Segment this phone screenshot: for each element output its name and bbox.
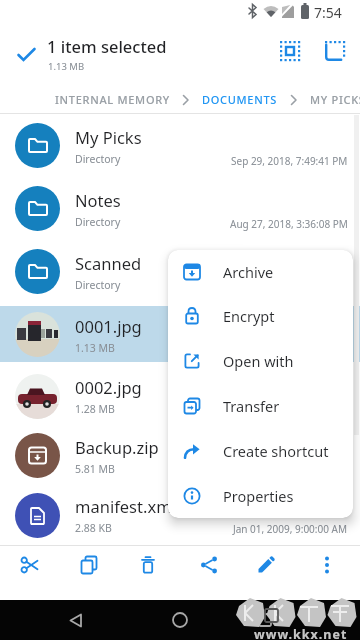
staticText: Jan 01, 2009, 9:00:00 AM (233, 522, 348, 536)
button[interactable] (245, 600, 285, 640)
staticText: 7:54 (314, 3, 342, 22)
button[interactable]: DOCUMENTS (202, 92, 278, 107)
staticText: Directory (75, 215, 121, 229)
staticText: 1.28 MB (75, 402, 115, 416)
button[interactable]: manifest.xml (0, 485, 360, 545)
staticText: 1 item selected (47, 35, 167, 57)
button[interactable]: Open with (168, 338, 353, 383)
staticText: Encrypt (223, 306, 275, 326)
staticText: 1.13 MB (48, 60, 85, 73)
button[interactable]: Scanned (0, 240, 360, 303)
staticText: Directory (75, 152, 121, 166)
staticText: My Picks (75, 126, 142, 148)
staticText: Open with (223, 351, 294, 371)
staticText: Properties (223, 486, 294, 506)
button[interactable] (189, 545, 229, 585)
button[interactable]: Properties (168, 473, 353, 518)
button[interactable]: Encrypt (168, 294, 353, 338)
staticText: 5.81 MB (75, 462, 115, 476)
staticText: Notes (75, 189, 121, 211)
button[interactable] (307, 545, 347, 585)
button[interactable] (128, 545, 168, 585)
button[interactable]: My Picks (0, 114, 360, 177)
button[interactable] (55, 600, 95, 640)
button[interactable] (8, 36, 44, 72)
button[interactable]: 0001.jpg (0, 303, 360, 366)
button[interactable]: INTERNAL MEMORY (55, 92, 170, 107)
button[interactable]: Transfer (168, 383, 353, 428)
staticText: Sep 29, 2018, 7:49:41 PM (231, 154, 348, 168)
staticText: Scanned (75, 252, 142, 274)
staticText: www.kkx.net (254, 626, 348, 640)
staticText: 2.88 KB (75, 521, 112, 535)
staticText: Directory (75, 278, 121, 292)
staticText: Aug 27, 2018, 3:36:08 PM (230, 217, 348, 231)
staticText: Backup.zip (75, 436, 159, 458)
staticText: Archive (223, 262, 274, 282)
button[interactable]: Notes (0, 177, 360, 240)
button[interactable]: Archive (168, 250, 353, 294)
button[interactable] (246, 545, 286, 585)
button[interactable]: MY PICKS (310, 92, 360, 107)
button[interactable] (10, 545, 50, 585)
button[interactable] (272, 33, 308, 69)
button[interactable]: Create shortcut (168, 428, 353, 473)
button[interactable] (317, 33, 353, 69)
button[interactable]: Backup.zip (0, 426, 360, 485)
staticText: Transfer (223, 396, 280, 416)
staticText: 1.13 MB (75, 341, 115, 355)
staticText: 0001.jpg (75, 315, 142, 337)
staticText: Create shortcut (223, 441, 329, 461)
button[interactable] (69, 545, 109, 585)
staticText: 0002.jpg (75, 376, 142, 398)
button[interactable] (160, 600, 200, 640)
staticText: manifest.xml (75, 495, 176, 517)
button[interactable]: 0002.jpg (0, 366, 360, 426)
